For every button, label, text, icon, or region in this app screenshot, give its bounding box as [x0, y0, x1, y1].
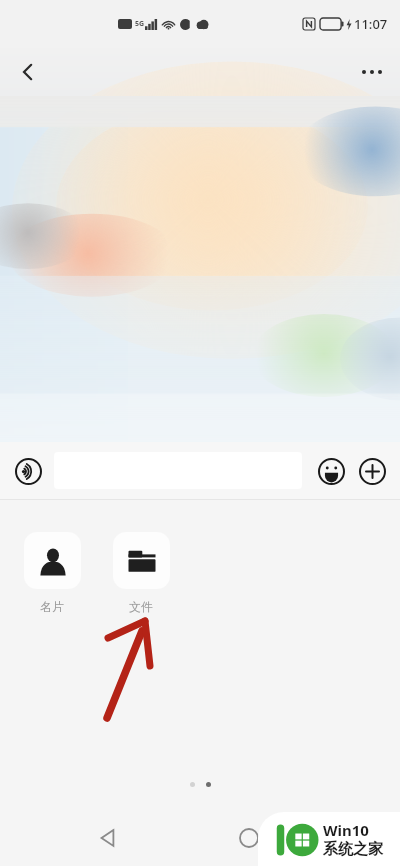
button[interactable]: Emoji — [312, 452, 350, 490]
staticText: Win10 — [323, 820, 369, 840]
staticText: 11:07 — [354, 15, 388, 33]
staticText: 名片 — [40, 599, 64, 614]
button[interactable]: Voice input — [9, 452, 47, 490]
button[interactable]: More functions — [353, 452, 391, 490]
button[interactable]: Home — [225, 814, 273, 862]
button[interactable]: 文件 — [111, 532, 171, 614]
staticText: 文件 — [129, 599, 153, 614]
staticText: 系统之家 — [323, 840, 383, 859]
button[interactable]: Back — [84, 814, 132, 862]
button[interactable]: More options — [350, 50, 394, 94]
button[interactable]: 名片 — [22, 532, 82, 614]
button[interactable]: Back — [6, 50, 50, 94]
staticText: 5G — [135, 19, 145, 29]
